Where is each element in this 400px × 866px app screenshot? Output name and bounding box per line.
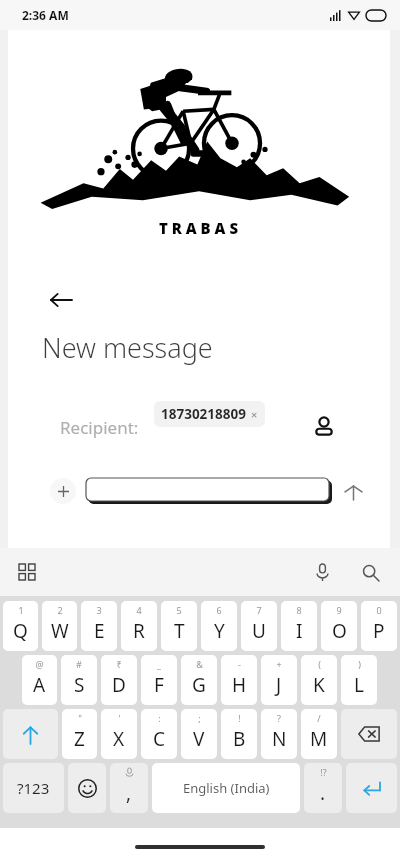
staticText: 4 [136, 604, 142, 616]
staticText: D [112, 672, 126, 698]
staticText: 8 [296, 604, 302, 616]
button[interactable]: ) [341, 655, 377, 705]
staticText: ? [277, 712, 281, 724]
staticText: T [174, 618, 185, 644]
staticText: 5 [176, 604, 182, 616]
staticText: L [354, 672, 364, 698]
button[interactable]: !? [304, 763, 342, 813]
staticText: & [196, 658, 203, 670]
button[interactable]: 8 [281, 601, 317, 651]
staticText: M [310, 726, 328, 752]
staticText: 1 [18, 604, 24, 616]
staticText: X [113, 726, 125, 752]
staticText: 3 [96, 604, 102, 616]
staticText: S [74, 672, 85, 698]
button[interactable]: Symbols [3, 763, 64, 813]
button[interactable]: 0 [361, 601, 397, 651]
staticText: Recipient: [60, 416, 139, 439]
button[interactable]: & [181, 655, 217, 705]
staticText: C [153, 726, 166, 752]
button[interactable]: English (India) [152, 763, 300, 813]
staticText: New message [42, 329, 213, 366]
staticText: ) [358, 658, 361, 670]
button[interactable]: Contacts [306, 409, 342, 445]
button[interactable]: Shift [3, 709, 58, 759]
staticText: T R A B A S [159, 218, 239, 238]
button[interactable]: 18730218809 [154, 401, 265, 427]
button[interactable]: ' [101, 709, 137, 759]
button[interactable]: ? [261, 709, 297, 759]
staticText: A [33, 672, 46, 698]
staticText: 7 [256, 604, 262, 616]
staticText: I [296, 618, 303, 644]
button[interactable]: @ [22, 655, 57, 705]
staticText: + [276, 658, 282, 670]
staticText: × [251, 407, 258, 422]
button[interactable]: 1 [3, 601, 38, 651]
staticText: ( [318, 658, 321, 670]
staticText: P [373, 618, 385, 644]
staticText: K [313, 672, 325, 698]
button[interactable]: # [61, 655, 97, 705]
button[interactable]: Send [336, 474, 370, 508]
staticText: 18730218809 [161, 405, 246, 423]
staticText: 9 [336, 604, 342, 616]
button[interactable]: Voice input [304, 554, 340, 590]
staticText: _ [157, 658, 161, 670]
button[interactable]: _ [141, 655, 177, 705]
staticText: O [332, 618, 347, 644]
button[interactable]: ! [221, 709, 257, 759]
staticText: B [233, 726, 246, 752]
button[interactable]: 3 [81, 601, 117, 651]
button[interactable]: - [221, 655, 257, 705]
staticText: 0 [376, 604, 382, 616]
staticText: - [238, 658, 241, 670]
button[interactable]: Emoji [68, 763, 106, 813]
button[interactable]: 5 [161, 601, 197, 651]
button[interactable]: ; [181, 709, 217, 759]
button[interactable]: 7 [241, 601, 277, 651]
staticText: ; [198, 712, 201, 724]
staticText: 2:36 AM [22, 7, 69, 23]
staticText: E [94, 618, 105, 644]
staticText: W [51, 618, 69, 644]
staticText: Y [214, 618, 225, 644]
staticText: G [192, 672, 206, 698]
staticText: N [272, 726, 287, 752]
button[interactable]: Search [352, 554, 388, 590]
staticText: / [317, 712, 321, 724]
button[interactable]: ( [301, 655, 337, 705]
button[interactable]: " [62, 709, 97, 759]
button[interactable]: Add attachment [50, 478, 76, 504]
button[interactable]: 6 [201, 601, 237, 651]
staticText: @ [35, 658, 44, 670]
staticText: # [76, 658, 82, 670]
button[interactable]: , [110, 763, 148, 813]
button[interactable]: / [301, 709, 337, 759]
staticText: ' [118, 712, 121, 724]
staticText: ₹ [116, 658, 122, 670]
staticText: 6 [216, 604, 222, 616]
staticText: Z [74, 726, 85, 752]
button[interactable]: + [261, 655, 297, 705]
staticText: : [158, 712, 161, 724]
button[interactable]: : [141, 709, 177, 759]
button[interactable]: ₹ [101, 655, 137, 705]
button[interactable]: Backspace [341, 709, 397, 759]
staticText: F [154, 672, 164, 698]
button[interactable]: Keyboard options [10, 555, 44, 589]
button[interactable] [86, 478, 332, 504]
button[interactable]: 9 [321, 601, 357, 651]
staticText: !? [320, 766, 327, 778]
button[interactable]: Back [44, 283, 78, 317]
staticText: U [252, 618, 266, 644]
button[interactable]: Enter [346, 763, 397, 813]
staticText: Q [13, 618, 28, 644]
staticText: H [232, 672, 247, 698]
button[interactable]: 4 [121, 601, 157, 651]
staticText: 2 [57, 604, 63, 616]
staticText: . [320, 780, 326, 806]
staticText: ! [238, 712, 241, 724]
button[interactable]: 2 [42, 601, 77, 651]
staticText: ?123 [17, 778, 50, 798]
